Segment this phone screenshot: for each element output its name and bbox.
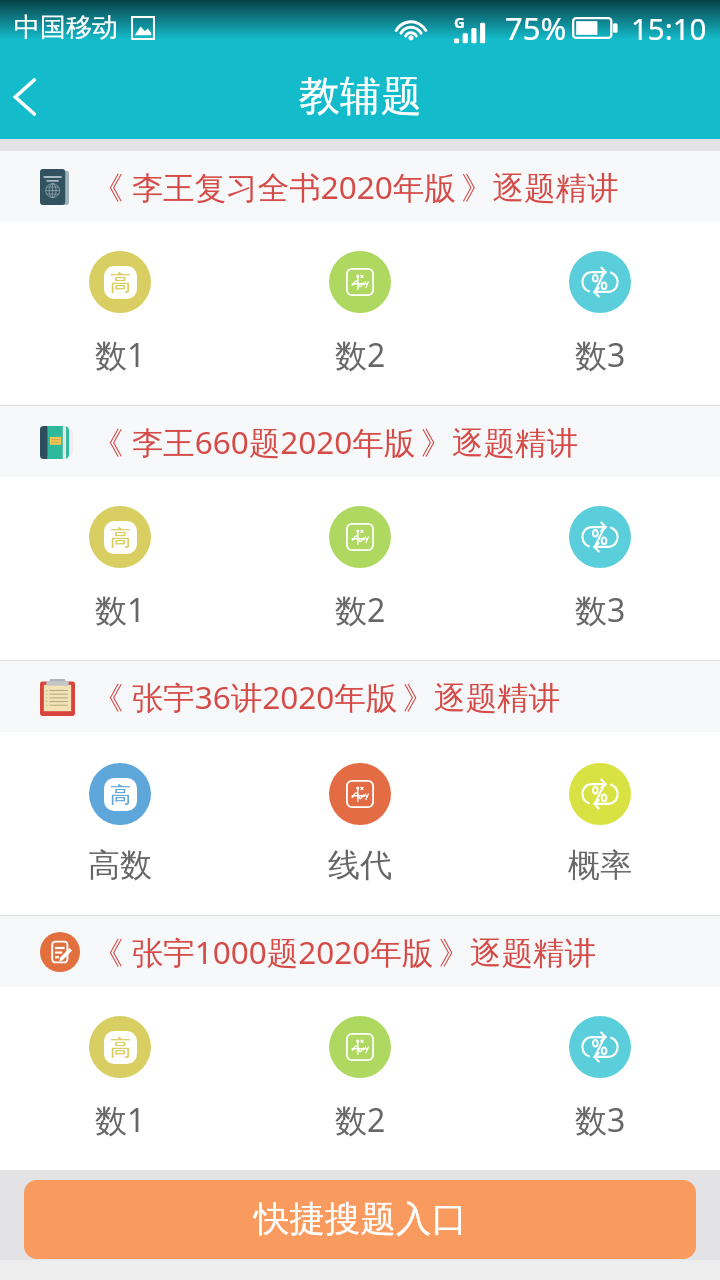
staticText: 数3	[575, 333, 626, 377]
button[interactable]: 数2	[240, 987, 480, 1170]
staticText: 15:10	[631, 8, 707, 48]
button[interactable]: 数3	[480, 477, 720, 660]
button[interactable]: 高	[0, 987, 240, 1170]
staticText: 《 张宇1000题2020年版 》逐题精讲	[92, 930, 597, 973]
staticText: 高	[110, 270, 131, 296]
staticText: 概率	[568, 845, 632, 885]
staticText: 高	[110, 782, 131, 808]
staticText: 数2	[335, 588, 386, 632]
staticText: 数1	[95, 588, 146, 632]
staticText: 《 李王复习全书2020年版 》逐题精讲	[92, 165, 619, 208]
staticText: G	[454, 12, 465, 32]
staticText: 75%	[505, 7, 567, 49]
staticText: 《 李王660题2020年版 》逐题精讲	[92, 420, 579, 463]
button[interactable]: 数2	[240, 477, 480, 660]
staticText: 《 张宇36讲2020年版 》逐题精讲	[92, 675, 561, 718]
button[interactable]: 高	[0, 732, 240, 915]
staticText: 快捷搜题入口	[254, 1197, 467, 1242]
button[interactable]: 数3	[480, 987, 720, 1170]
staticText: 数2	[335, 333, 386, 377]
staticText: 数2	[335, 1098, 386, 1142]
button[interactable]: 线代	[240, 732, 480, 915]
button[interactable]: 《 李王660题2020年版 》逐题精讲	[0, 406, 720, 477]
staticText: 高	[110, 1035, 131, 1061]
staticText: 教辅题	[299, 71, 422, 123]
staticText: 线代	[328, 845, 392, 885]
staticText: 中国移动	[14, 11, 118, 44]
button[interactable]: Back	[0, 55, 49, 139]
button[interactable]: 数3	[480, 222, 720, 405]
button[interactable]: 高	[0, 477, 240, 660]
button[interactable]: 《 李王复习全书2020年版 》逐题精讲	[0, 151, 720, 222]
staticText: 数3	[575, 588, 626, 632]
staticText: 数1	[95, 333, 146, 377]
staticText: 高	[110, 525, 131, 551]
button[interactable]: 数2	[240, 222, 480, 405]
button[interactable]: 快捷搜题入口	[24, 1180, 696, 1259]
button[interactable]: 高	[0, 222, 240, 405]
staticText: 数1	[95, 1098, 146, 1142]
staticText: 高数	[88, 845, 152, 885]
button[interactable]: 《 张宇36讲2020年版 》逐题精讲	[0, 661, 720, 732]
staticText: 数3	[575, 1098, 626, 1142]
button[interactable]: 概率	[480, 732, 720, 915]
button[interactable]: 《 张宇1000题2020年版 》逐题精讲	[0, 916, 720, 987]
